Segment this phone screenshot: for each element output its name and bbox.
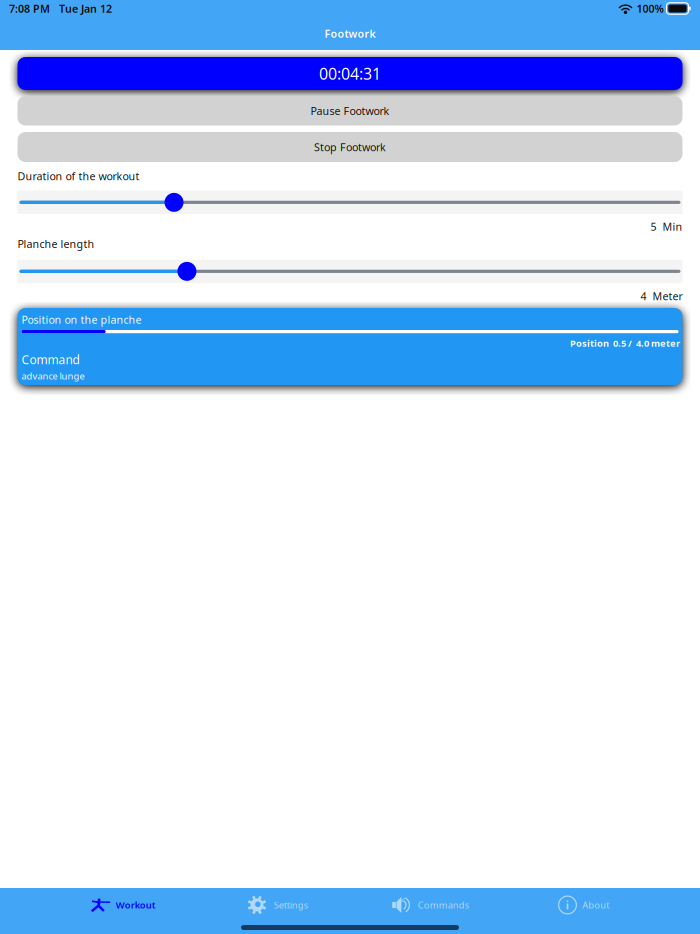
button[interactable]: Commands xyxy=(353,889,507,921)
staticText: Command xyxy=(21,352,79,368)
button[interactable]: Settings xyxy=(200,889,353,921)
button[interactable]: About xyxy=(507,889,660,921)
staticText: Duration of the workout xyxy=(17,169,139,183)
staticText: Planche length xyxy=(17,237,94,251)
staticText: Settings xyxy=(274,899,308,911)
staticText: 100% xyxy=(633,1,666,16)
staticText: Footwork xyxy=(324,26,375,41)
button[interactable]: 00:04:31 xyxy=(17,57,682,90)
staticText: About xyxy=(582,899,609,911)
staticText: Workout xyxy=(116,899,156,911)
staticText: Stop Footwork xyxy=(314,140,386,154)
staticText: 7:08 PM xyxy=(9,1,50,16)
staticText: 4 Meter xyxy=(640,289,682,303)
staticText: Position on the planche xyxy=(21,312,141,327)
staticText: Commands xyxy=(418,899,469,911)
button[interactable]: Stop Footwork xyxy=(17,132,682,162)
staticText: Pause Footwork xyxy=(310,104,389,118)
staticText: 5 Min xyxy=(650,219,682,234)
staticText: advance lunge xyxy=(21,370,84,382)
staticText: 00:04:31 xyxy=(319,63,381,84)
button[interactable]: Workout xyxy=(46,889,200,921)
staticText: Position 0.5 / 4.0 meter xyxy=(570,337,680,349)
staticText: Tue Jan 12 xyxy=(50,1,112,16)
button[interactable]: Pause Footwork xyxy=(17,96,682,125)
